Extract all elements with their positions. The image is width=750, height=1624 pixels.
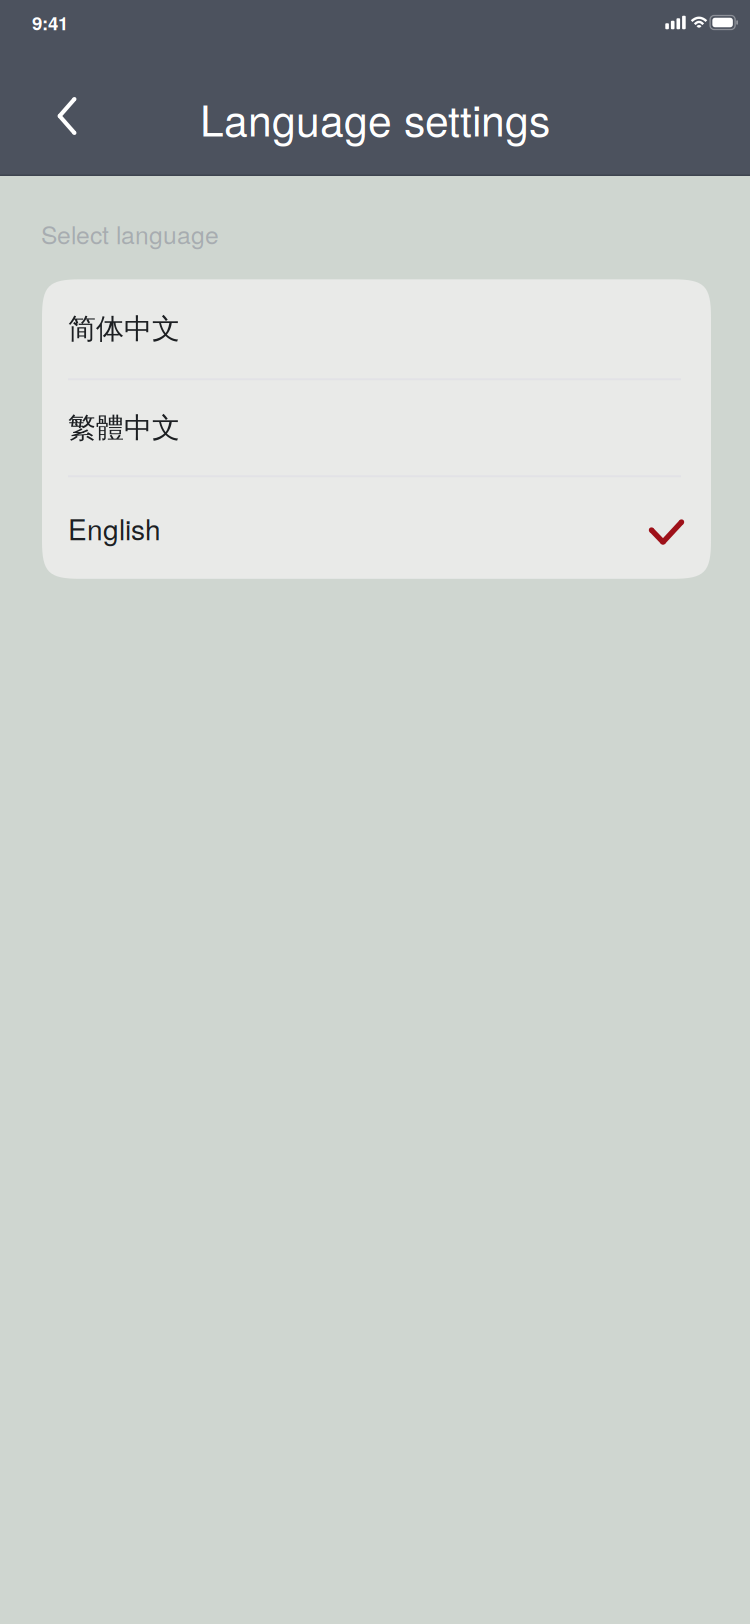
button[interactable]: 繁體中文 xyxy=(42,380,711,475)
button[interactable]: 简体中文 xyxy=(42,279,711,378)
staticText: 简体中文 xyxy=(68,311,180,346)
button[interactable]: English xyxy=(42,477,711,579)
staticText: 9:41 xyxy=(32,9,68,36)
staticText: Language settings xyxy=(200,87,550,149)
button[interactable]: Back xyxy=(31,66,103,154)
staticText: English xyxy=(68,508,161,548)
staticText: 繁體中文 xyxy=(68,410,180,445)
staticText: Select language xyxy=(41,216,219,251)
